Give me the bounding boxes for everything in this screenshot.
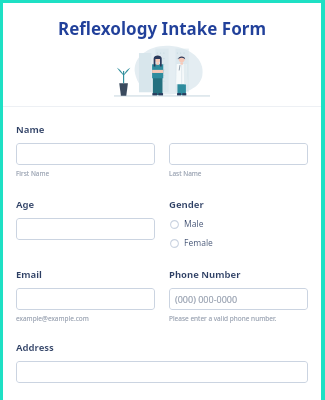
button[interactable]	[16, 218, 155, 240]
staticText: Gender	[169, 198, 204, 211]
button[interactable]	[16, 143, 155, 165]
button[interactable]	[16, 288, 155, 310]
staticText: Reflexology Intake Form	[3, 17, 321, 40]
button[interactable]	[169, 143, 308, 165]
staticText: First Name	[16, 169, 50, 178]
staticText: Female	[184, 237, 213, 249]
staticText: Last Name	[169, 169, 202, 178]
button[interactable]: (000) 000-0000	[169, 288, 308, 310]
staticText: Email	[16, 268, 42, 281]
staticText: Name	[16, 123, 45, 136]
button[interactable]	[16, 361, 308, 383]
staticText: (000) 000-0000	[175, 293, 238, 305]
button[interactable]: Male	[169, 217, 205, 231]
staticText: example@example.com	[16, 314, 89, 323]
staticText: Address	[16, 341, 54, 354]
button[interactable]: Female	[169, 236, 214, 250]
staticText: Phone Number	[169, 268, 241, 281]
other: Medical staff illustration	[114, 43, 210, 99]
staticText: Male	[184, 218, 204, 230]
staticText: Age	[16, 198, 35, 211]
staticText: Please enter a valid phone number.	[169, 314, 277, 323]
